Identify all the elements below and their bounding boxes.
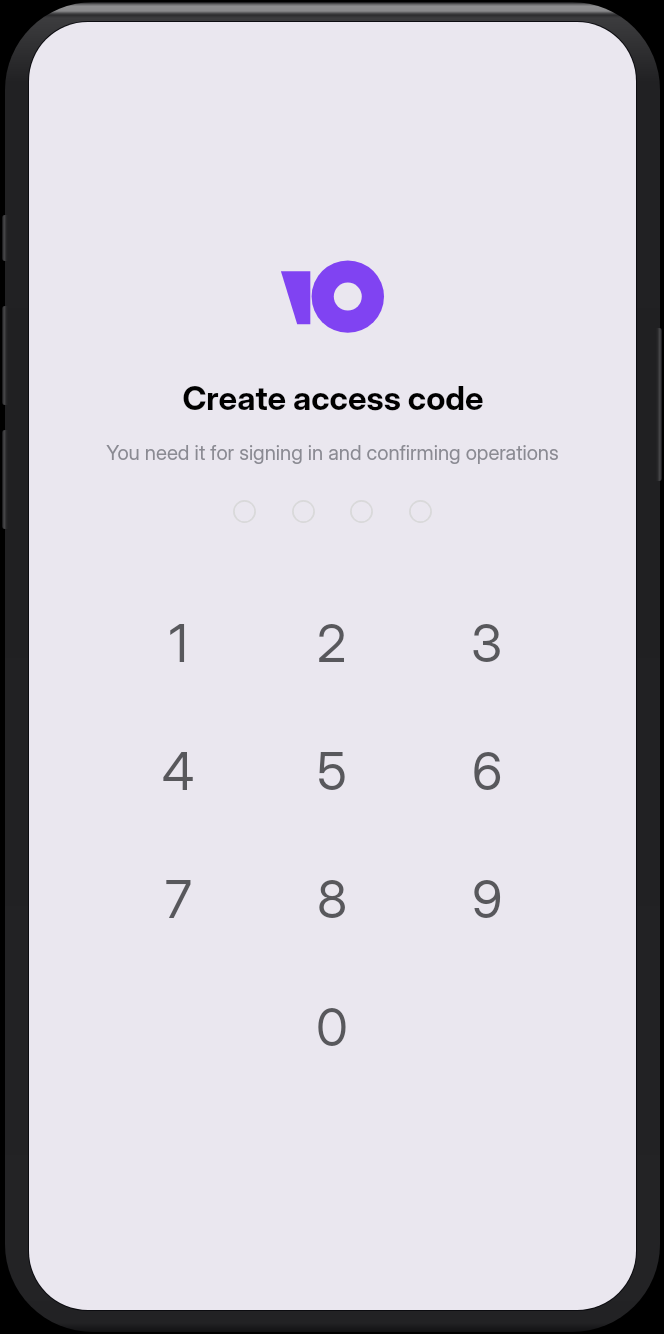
- button[interactable]: 3: [417, 583, 557, 703]
- staticText: 6: [472, 740, 503, 803]
- other: YooMoney logo: [281, 260, 384, 333]
- staticText: 4: [162, 740, 195, 803]
- staticText: Create access code: [182, 378, 484, 418]
- staticText: 0: [316, 996, 348, 1059]
- button[interactable]: 9: [417, 839, 557, 959]
- button[interactable]: 7: [108, 839, 248, 959]
- button[interactable]: 2: [262, 583, 402, 703]
- button[interactable]: 5: [262, 711, 402, 831]
- staticText: 5: [317, 740, 347, 803]
- button[interactable]: 0: [262, 967, 402, 1087]
- button[interactable]: 8: [262, 839, 402, 959]
- button[interactable]: 1: [108, 583, 248, 703]
- staticText: 2: [317, 612, 347, 675]
- staticText: 7: [165, 868, 192, 931]
- staticText: You need it for signing in and confirmin…: [106, 440, 559, 465]
- button[interactable]: 6: [417, 711, 557, 831]
- staticText: 3: [471, 612, 503, 675]
- staticText: 1: [169, 612, 188, 675]
- staticText: 8: [317, 868, 348, 931]
- staticText: 9: [472, 868, 503, 931]
- button[interactable]: 4: [108, 711, 248, 831]
